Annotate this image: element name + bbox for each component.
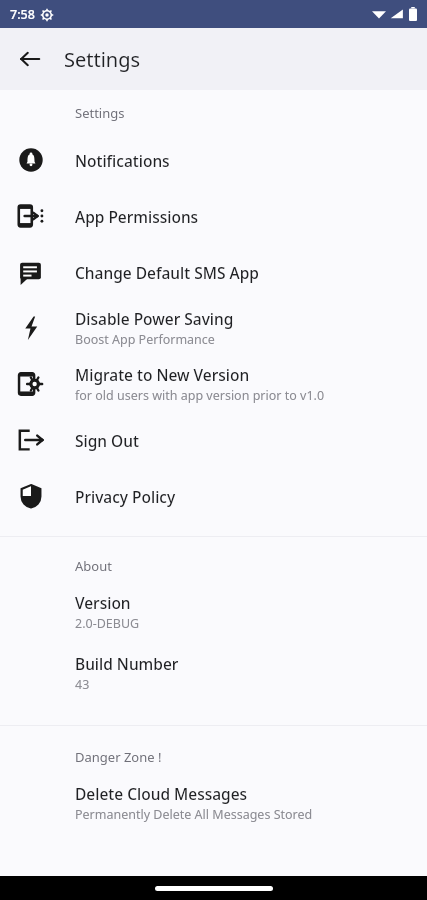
staticText: Sign Out: [75, 430, 139, 451]
button[interactable]: Change Default SMS App: [0, 244, 427, 300]
staticText: Permanently Delete All Messages Stored: [75, 806, 313, 823]
staticText: Settings: [64, 46, 141, 73]
button[interactable]: Version: [0, 585, 427, 646]
button[interactable]: Privacy Policy: [0, 468, 427, 524]
staticText: Change Default SMS App: [75, 262, 259, 283]
staticText: Danger Zone !: [75, 748, 162, 766]
staticText: App Permissions: [75, 206, 199, 227]
button[interactable]: Delete Cloud Messages: [0, 776, 427, 837]
staticText: Migrate to New Version: [75, 364, 250, 385]
staticText: Settings: [75, 104, 125, 122]
staticText: 7:58: [10, 6, 35, 23]
button[interactable]: Disable Power Saving: [0, 300, 427, 356]
staticText: 2.0-DEBUG: [75, 615, 140, 632]
staticText: Build Number: [75, 653, 179, 674]
staticText: Privacy Policy: [75, 486, 176, 507]
staticText: Disable Power Saving: [75, 308, 234, 329]
staticText: Delete Cloud Messages: [75, 783, 248, 804]
staticText: About: [75, 557, 112, 575]
button[interactable]: Build Number: [0, 646, 427, 707]
staticText: Notifications: [75, 150, 170, 171]
button[interactable]: Sign Out: [0, 412, 427, 468]
staticText: 43: [75, 676, 90, 693]
button[interactable]: Back: [8, 37, 52, 81]
button[interactable]: Migrate to New Version: [0, 356, 427, 412]
staticText: Boost App Performance: [75, 331, 215, 348]
staticText: Version: [75, 592, 131, 613]
button[interactable]: App Permissions: [0, 188, 427, 244]
button[interactable]: Notifications: [0, 132, 427, 188]
staticText: for old users with app version prior to …: [75, 387, 325, 404]
